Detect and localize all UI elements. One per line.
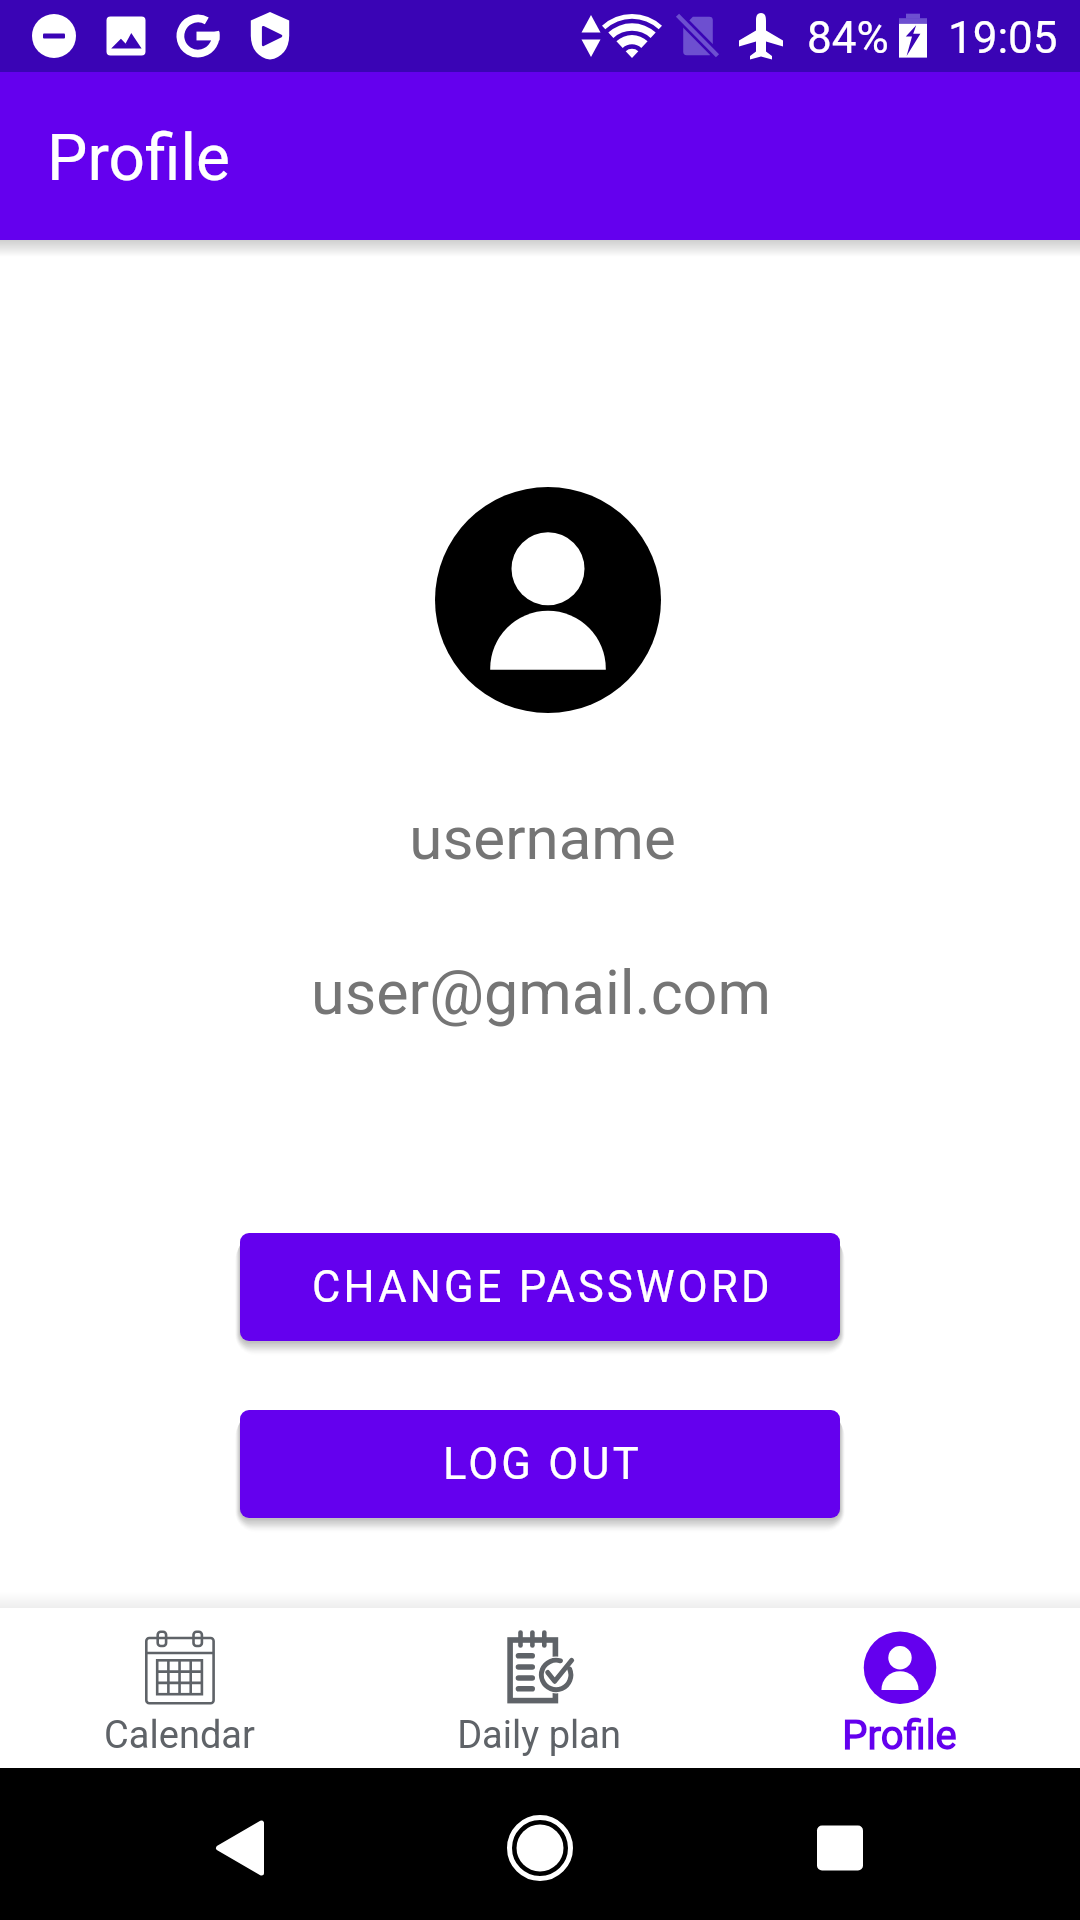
staticText: Profile bbox=[842, 1712, 957, 1759]
button[interactable] bbox=[0, 1608, 360, 1768]
staticText: LOG OUT bbox=[443, 1439, 642, 1490]
button[interactable]: CHANGE PASSWORD bbox=[240, 1233, 840, 1341]
staticText: 19:05 bbox=[948, 12, 1058, 64]
staticText: CHANGE PASSWORD bbox=[312, 1262, 773, 1313]
staticText: username bbox=[409, 803, 676, 873]
button[interactable] bbox=[720, 1608, 1080, 1768]
button[interactable] bbox=[360, 1608, 720, 1768]
staticText: Calendar bbox=[104, 1713, 255, 1758]
button[interactable]: Recent apps bbox=[764, 1772, 916, 1920]
button[interactable]: LOG OUT bbox=[240, 1410, 840, 1518]
staticText: user@gmail.com bbox=[311, 957, 771, 1028]
staticText: 84% bbox=[807, 12, 889, 64]
staticText: Daily plan bbox=[457, 1713, 621, 1758]
button[interactable]: Home bbox=[464, 1772, 616, 1920]
button[interactable]: Back bbox=[164, 1772, 316, 1920]
staticText: Profile bbox=[47, 121, 230, 196]
